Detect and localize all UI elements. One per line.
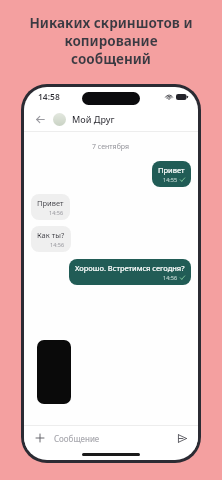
staticText: 7 сентября	[92, 142, 130, 152]
button[interactable]: Как ты?	[31, 226, 71, 252]
button[interactable]: Привет	[31, 194, 70, 220]
staticText: Привет	[37, 198, 64, 208]
staticText: Как ты?	[37, 230, 65, 240]
staticText: сообщений	[71, 50, 151, 68]
staticText: 14:58	[38, 91, 60, 103]
staticText: Привет	[158, 165, 185, 175]
staticText: Хорошо. Встретимся сегодня?	[75, 263, 185, 273]
staticText: 14:55	[163, 176, 178, 183]
button[interactable]: Привет	[152, 161, 191, 187]
button[interactable]: Send	[175, 431, 189, 445]
button[interactable]: Сообщение	[54, 433, 175, 444]
button[interactable]: Hidden media	[37, 340, 71, 404]
staticText: 14:56	[163, 274, 178, 281]
button[interactable]: Back	[32, 111, 48, 127]
staticText: 14:56	[50, 241, 65, 248]
button[interactable]: Хорошо. Встретимся сегодня?	[69, 259, 191, 285]
staticText: Никаких скриншотов и	[29, 14, 193, 32]
staticText: Сообщение	[54, 433, 100, 444]
staticText: 14:56	[49, 209, 64, 216]
button[interactable]: Attach	[33, 431, 47, 445]
staticText: Мой Друг	[72, 113, 115, 125]
staticText: копирование	[64, 32, 158, 50]
